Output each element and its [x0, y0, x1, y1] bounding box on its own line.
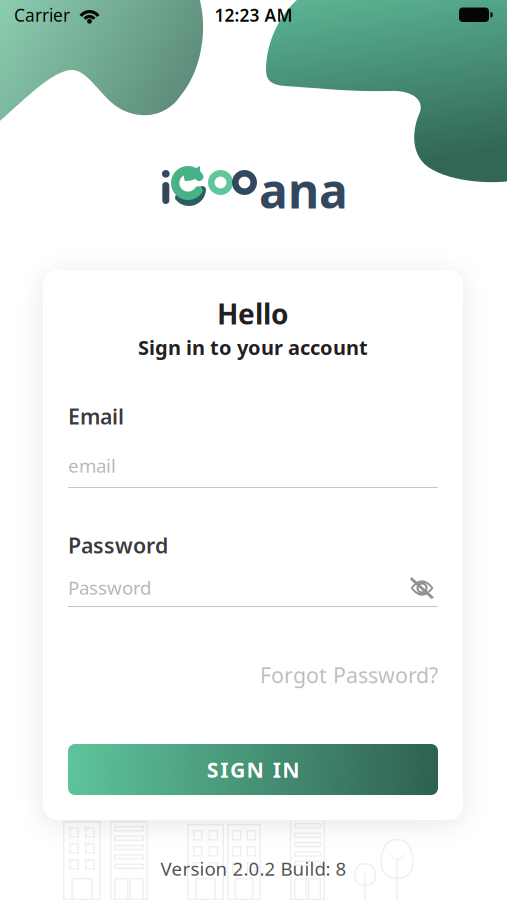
staticText: Sign in to your account: [138, 334, 368, 361]
staticText: Hello: [217, 295, 289, 332]
staticText: Password: [68, 575, 151, 600]
staticText: Password: [68, 531, 168, 559]
staticText: Version 2.0.2 Build: 8: [160, 856, 346, 881]
staticText: SIGN IN: [207, 755, 299, 784]
staticText: Forgot Password?: [260, 661, 438, 689]
button[interactable]: Show password: [400, 569, 444, 607]
staticText: Carrier: [14, 3, 70, 26]
button[interactable]: SIGN IN: [68, 744, 438, 795]
staticText: email: [68, 453, 116, 478]
staticText: Email: [68, 402, 124, 430]
staticText: ana: [259, 158, 348, 222]
button[interactable]: Forgot Password?: [68, 660, 438, 690]
staticText: 12:23 AM: [214, 3, 292, 26]
